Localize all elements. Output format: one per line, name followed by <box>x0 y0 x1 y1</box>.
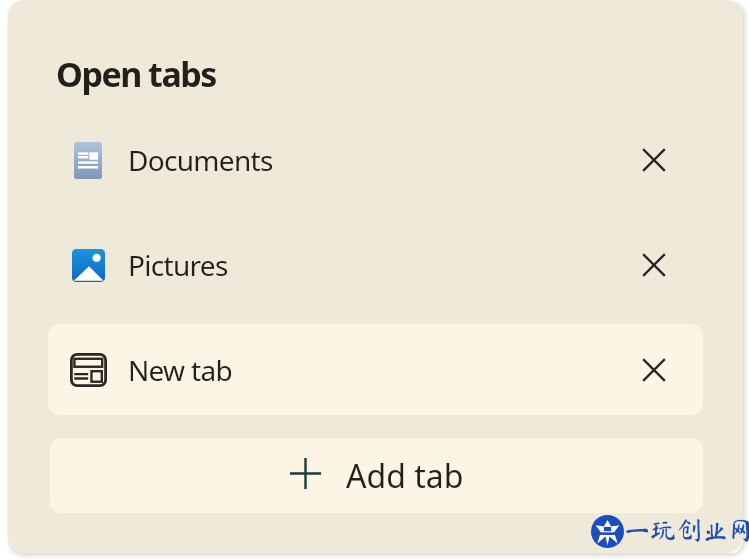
staticText: 一玩创业网 <box>624 517 749 543</box>
button[interactable]: Close Pictures <box>631 242 677 288</box>
staticText: Documents <box>128 141 273 179</box>
staticText: Open tabs <box>56 51 216 97</box>
button[interactable]: New tab <box>48 324 703 415</box>
button[interactable]: Pictures <box>48 219 703 310</box>
button[interactable]: Close New tab <box>631 347 677 393</box>
staticText: Add tab <box>346 454 464 498</box>
staticText: New tab <box>128 351 232 389</box>
button[interactable]: Documents <box>48 114 703 205</box>
button[interactable]: Add tab <box>50 438 703 513</box>
button[interactable]: Close Documents <box>631 137 677 183</box>
staticText: Pictures <box>128 246 228 284</box>
